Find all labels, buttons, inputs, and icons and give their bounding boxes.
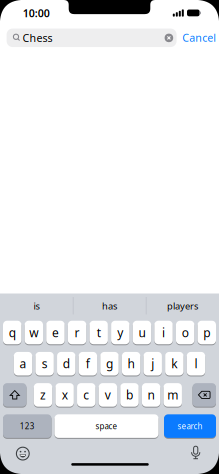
staticText: p: [203, 324, 210, 340]
button[interactable]: b: [120, 383, 139, 408]
staticText: e: [52, 324, 59, 340]
button[interactable]: s: [35, 352, 54, 376]
button[interactable]: x: [55, 383, 74, 408]
staticText: x: [62, 387, 68, 403]
staticText: search: [177, 421, 202, 431]
button[interactable]: players: [146, 294, 218, 318]
button[interactable]: search: [164, 414, 216, 439]
button[interactable]: t: [89, 321, 108, 345]
button[interactable]: is: [0, 294, 72, 318]
staticText: 123: [20, 421, 35, 431]
staticText: q: [9, 324, 16, 340]
button[interactable]: k: [165, 352, 183, 376]
staticText: i: [162, 324, 165, 340]
button[interactable]: r: [68, 321, 86, 345]
staticText: u: [138, 324, 145, 340]
staticText: l: [194, 356, 197, 372]
button[interactable]: c: [77, 383, 95, 408]
staticText: n: [148, 387, 155, 403]
button[interactable]: z: [34, 383, 52, 408]
staticText: Cancel: [182, 31, 216, 45]
staticText: has: [102, 300, 117, 312]
button[interactable]: space: [54, 414, 158, 439]
staticText: g: [106, 356, 113, 372]
button[interactable]: h: [122, 352, 140, 376]
button[interactable]: m: [163, 383, 182, 408]
button[interactable]: Dictation: [189, 445, 203, 461]
staticText: h: [128, 356, 135, 372]
staticText: 10:00: [23, 6, 50, 20]
button[interactable]: Clear text: [165, 34, 173, 42]
staticText: r: [75, 324, 80, 340]
button[interactable]: e: [46, 321, 65, 345]
button[interactable]: n: [142, 383, 160, 408]
button[interactable]: g: [100, 352, 119, 376]
button[interactable]: w: [25, 321, 43, 345]
button[interactable]: f: [79, 352, 97, 376]
button[interactable]: 123: [3, 414, 51, 439]
button[interactable]: j: [143, 352, 162, 376]
button[interactable]: p: [198, 321, 216, 345]
button[interactable]: a: [14, 352, 32, 376]
staticText: players: [167, 300, 198, 312]
staticText: a: [19, 356, 26, 372]
staticText: is: [33, 300, 39, 312]
button[interactable]: u: [133, 321, 151, 345]
button[interactable]: Cancel: [182, 31, 216, 45]
staticText: d: [63, 356, 70, 372]
staticText: b: [126, 387, 133, 403]
button[interactable]: Search field: [7, 28, 177, 47]
button[interactable]: l: [187, 352, 205, 376]
staticText: o: [182, 324, 189, 340]
button[interactable]: has: [73, 294, 145, 318]
staticText: s: [42, 356, 48, 372]
staticText: z: [40, 387, 46, 403]
button[interactable]: Shift: [3, 383, 26, 408]
staticText: Chess: [23, 31, 53, 45]
button[interactable]: o: [176, 321, 194, 345]
staticText: t: [97, 324, 101, 340]
staticText: y: [117, 324, 123, 340]
staticText: v: [105, 387, 111, 403]
staticText: f: [86, 356, 90, 372]
button[interactable]: q: [3, 321, 21, 345]
staticText: space: [95, 421, 117, 431]
staticText: c: [83, 387, 89, 403]
staticText: k: [171, 356, 177, 372]
button[interactable]: Emoji: [16, 447, 30, 461]
button[interactable]: i: [154, 321, 173, 345]
button[interactable]: d: [57, 352, 75, 376]
staticText: j: [151, 356, 154, 372]
button[interactable]: y: [111, 321, 129, 345]
staticText: w: [29, 324, 38, 340]
staticText: m: [167, 387, 178, 403]
button[interactable]: v: [99, 383, 117, 408]
button[interactable]: Delete: [192, 383, 216, 408]
